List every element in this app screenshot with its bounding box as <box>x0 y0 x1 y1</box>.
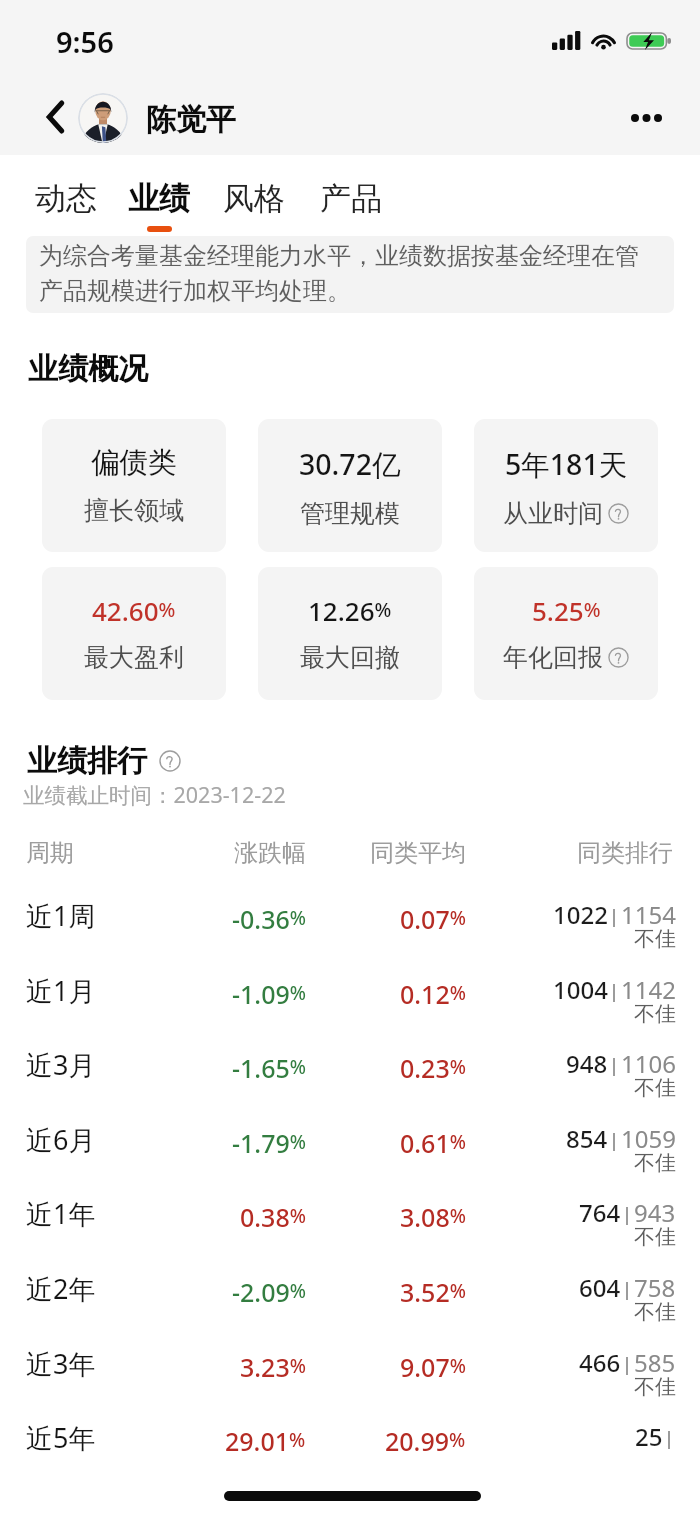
staticText: 29.01% <box>225 1424 306 1458</box>
staticText: -2.09% <box>232 1275 306 1309</box>
button[interactable]: 动态 <box>25 179 107 241</box>
staticText: 年化回报 <box>503 642 603 673</box>
staticText: 不佳 <box>634 1224 676 1250</box>
staticText: 943 <box>634 1196 676 1229</box>
button[interactable]: 产品 <box>310 179 392 241</box>
staticText: 近3年 <box>26 1345 96 1382</box>
staticText: 42.60% <box>92 593 176 628</box>
staticText: 9:56 <box>56 22 114 61</box>
staticText: 30.72亿 <box>299 445 401 484</box>
staticText: 3.52% <box>400 1275 466 1309</box>
staticText: 风格 <box>223 179 285 218</box>
staticText: 产品 <box>320 179 382 218</box>
staticText: 近6月 <box>26 1121 96 1158</box>
staticText: 不佳 <box>634 1150 676 1176</box>
staticText: 604 <box>579 1271 621 1304</box>
button[interactable]: 5年181天 <box>474 419 658 552</box>
staticText: 动态 <box>35 179 97 218</box>
staticText: 业绩概况 <box>28 350 148 388</box>
staticText: 同类排行 <box>577 838 673 868</box>
button[interactable] <box>20 1173 680 1243</box>
staticText: 近2年 <box>26 1270 96 1307</box>
staticText: 从业时间 <box>503 498 603 529</box>
staticText: 854 <box>566 1122 608 1155</box>
staticText: 25 <box>635 1420 663 1453</box>
staticText: 0.23% <box>400 1051 466 1085</box>
staticText: 不佳 <box>634 1001 676 1027</box>
button[interactable] <box>20 1397 680 1467</box>
button[interactable]: 42.60% <box>42 567 226 700</box>
staticText: 不佳 <box>634 926 676 952</box>
staticText: 3.23% <box>240 1350 306 1384</box>
staticText: 近1年 <box>26 1195 96 1232</box>
button[interactable] <box>20 1248 680 1318</box>
button[interactable]: 业绩排行 <box>27 742 181 780</box>
staticText: 0.12% <box>400 977 466 1011</box>
staticText: 948 <box>566 1047 608 1080</box>
button[interactable] <box>20 1099 680 1169</box>
staticText: 758 <box>634 1271 676 1304</box>
button[interactable]: 30.72亿 <box>258 419 442 552</box>
staticText: 为综合考量基金经理能力水平，业绩数据按基金经理在管 产品规模进行加权平均处理。 <box>39 241 639 306</box>
staticText: 764 <box>579 1196 621 1229</box>
staticText: 1106 <box>621 1047 676 1080</box>
staticText: 1154 <box>621 898 676 931</box>
staticText: 最大盈利 <box>84 642 184 673</box>
staticText: 5年181天 <box>505 445 628 484</box>
staticText: 管理规模 <box>300 498 400 529</box>
button[interactable] <box>20 875 680 945</box>
staticText: 0.38% <box>240 1200 306 1234</box>
staticText: 20.99% <box>385 1424 466 1458</box>
button[interactable]: 业绩 <box>118 179 200 241</box>
staticText: 业绩排行 <box>27 742 147 780</box>
staticText: 近5年 <box>26 1419 96 1456</box>
staticText: 近1周 <box>26 897 96 934</box>
staticText: 12.26% <box>308 593 392 628</box>
staticText: 擅长领域 <box>84 495 184 526</box>
staticText: 585 <box>634 1346 676 1379</box>
staticText: 9.07% <box>400 1350 466 1384</box>
staticText: 近3月 <box>26 1046 96 1083</box>
staticText: 1142 <box>621 973 676 1006</box>
button[interactable] <box>20 1024 680 1094</box>
staticText: 1059 <box>621 1122 676 1155</box>
staticText: -0.36% <box>232 902 306 936</box>
button[interactable]: 12.26% <box>258 567 442 700</box>
button[interactable]: More options <box>622 94 670 142</box>
staticText: 5.25% <box>532 593 601 628</box>
button[interactable]: 5.25% <box>474 567 658 700</box>
staticText: 陈觉平 <box>146 101 236 139</box>
staticText: 3.08% <box>400 1200 466 1234</box>
button[interactable]: 偏债类 <box>42 419 226 552</box>
staticText: 466 <box>579 1346 621 1379</box>
button[interactable] <box>20 1323 680 1393</box>
staticText: 周期 <box>26 838 74 868</box>
staticText: 0.07% <box>400 902 466 936</box>
staticText: 涨跌幅 <box>234 838 306 868</box>
staticText: 1004 <box>553 973 608 1006</box>
staticText: 最大回撤 <box>300 642 400 673</box>
staticText: 业绩 <box>128 179 190 218</box>
staticText: 同类平均 <box>370 838 466 868</box>
staticText: 近1月 <box>26 972 96 1009</box>
staticText: 不佳 <box>634 1299 676 1325</box>
staticText: -1.09% <box>232 977 306 1011</box>
staticText: 1022 <box>553 898 608 931</box>
button[interactable]: Back <box>32 94 78 140</box>
button[interactable]: 风格 <box>213 179 295 241</box>
staticText: 偏债类 <box>91 445 177 481</box>
staticText: 不佳 <box>634 1374 676 1400</box>
staticText: 0.61% <box>400 1126 466 1160</box>
staticText: 不佳 <box>634 1075 676 1101</box>
staticText: 业绩截止时间：2023-12-22 <box>23 780 286 809</box>
button[interactable] <box>20 950 680 1020</box>
staticText: -1.65% <box>232 1051 306 1085</box>
staticText: -1.79% <box>232 1126 306 1160</box>
